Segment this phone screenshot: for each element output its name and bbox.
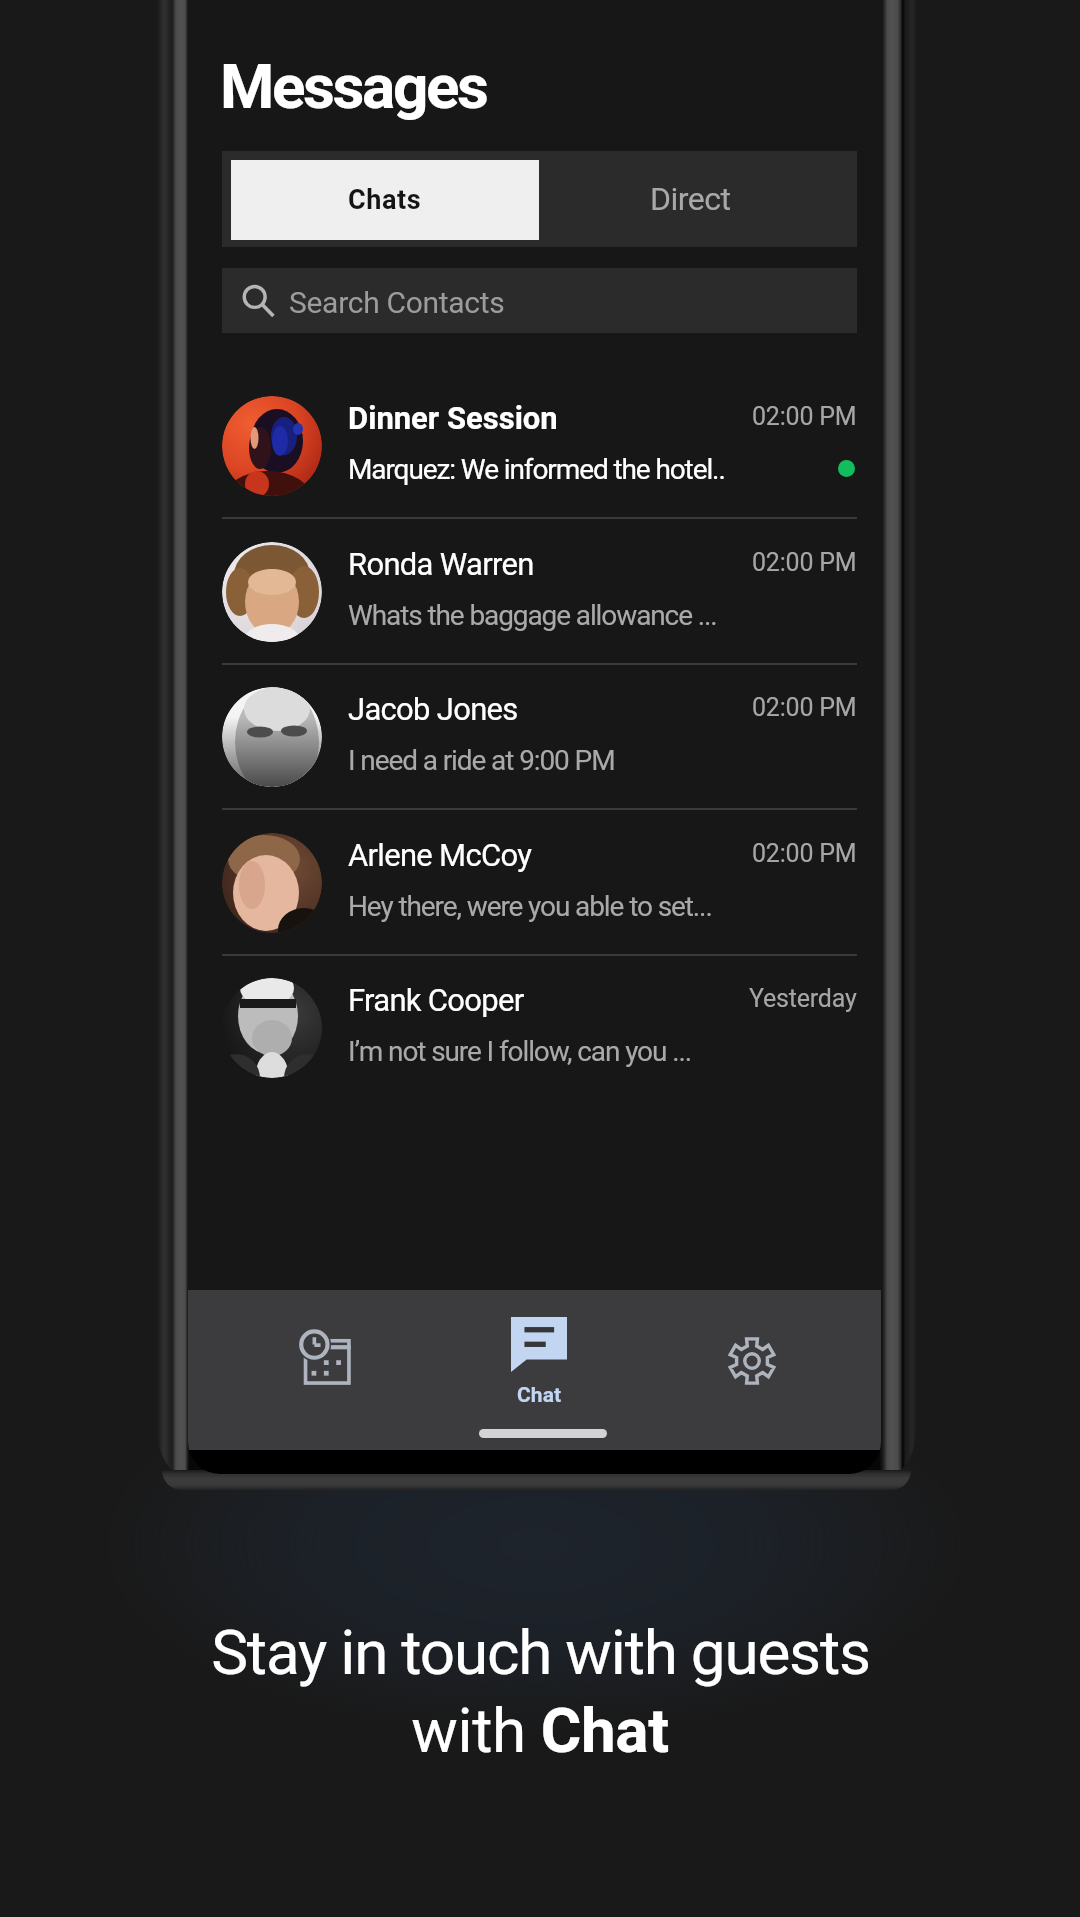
button[interactable]: Dinner Session [222,373,857,519]
staticText: Messages [220,50,487,123]
button[interactable]: Chat [463,1300,615,1420]
staticText: Frank Cooper [348,982,524,1018]
staticText: Chat [517,1383,562,1408]
staticText: Whats the baggage allowance ... [348,599,717,632]
button[interactable]: Frank Cooper [222,955,857,1101]
staticText: 02:00 PM [752,839,857,868]
staticText: I need a ride at 9:00 PM [348,744,615,777]
staticText: Yesterday [749,984,857,1013]
staticText: Stay in touch with guests [211,1616,870,1689]
staticText: Dinner Session [348,400,558,436]
staticText: 02:00 PM [752,548,857,577]
staticText: Arlene McCoy [348,837,532,873]
staticText: Ronda Warren [348,546,534,582]
staticText: 02:00 PM [752,402,857,431]
staticText: 02:00 PM [752,693,857,722]
staticText: Direct [650,180,731,218]
staticText: Jacob Jones [348,691,518,727]
button[interactable]: Schedule [249,1300,401,1410]
button[interactable]: Arlene McCoy [222,810,857,956]
button[interactable]: Search Contacts [222,268,857,333]
staticText: Marquez: We informed the hotel.. [348,453,725,486]
button[interactable]: Settings [676,1300,828,1410]
staticText: I’m not sure I follow, can you ... [348,1035,691,1068]
staticText: Search Contacts [289,285,505,320]
button[interactable]: Direct [539,151,857,247]
staticText: with Chat [411,1694,669,1767]
button[interactable]: Chats [231,160,539,240]
staticText: Hey there, were you able to set... [348,890,712,923]
button[interactable]: Ronda Warren [222,519,857,665]
button[interactable]: Jacob Jones [222,664,857,810]
staticText: Chats [348,184,422,216]
